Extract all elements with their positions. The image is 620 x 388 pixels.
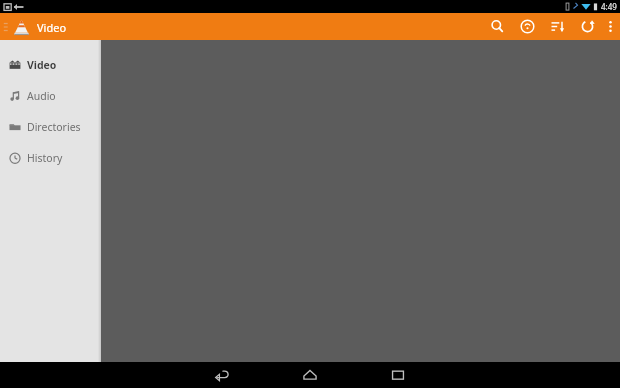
staticText: 4:49 bbox=[601, 1, 617, 12]
other: Open navigation drawer bbox=[2, 20, 8, 34]
staticText: Directories bbox=[27, 120, 81, 134]
button[interactable]: Directories bbox=[0, 111, 101, 142]
button[interactable]: Video bbox=[0, 49, 101, 80]
button[interactable]: Recent apps bbox=[378, 362, 418, 388]
button[interactable]: Search bbox=[482, 13, 512, 40]
button[interactable]: Sort bbox=[542, 13, 572, 40]
button[interactable]: Refresh bbox=[572, 13, 602, 40]
staticText: Video bbox=[27, 58, 57, 72]
staticText: Video bbox=[37, 20, 67, 35]
button[interactable]: Back bbox=[202, 362, 242, 388]
button[interactable]: Cast bbox=[512, 13, 542, 40]
button[interactable]: Home bbox=[290, 362, 330, 388]
button[interactable]: More options bbox=[602, 13, 618, 40]
button[interactable]: Open navigation drawer bbox=[0, 18, 73, 36]
button[interactable]: Audio bbox=[0, 80, 101, 111]
staticText: Audio bbox=[27, 89, 56, 103]
staticText: History bbox=[27, 151, 63, 165]
button[interactable]: History bbox=[0, 142, 101, 173]
